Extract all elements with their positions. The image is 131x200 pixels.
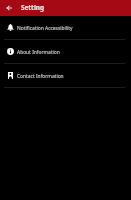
button[interactable]: About Information (0, 40, 131, 63)
staticText: About Information (17, 49, 60, 56)
staticText: Notification Accessibility (17, 25, 73, 32)
button[interactable]: Back (0, 0, 17, 16)
staticText: Setting (21, 3, 44, 12)
button[interactable]: Contact Information (0, 64, 131, 87)
staticText: Contact Information (17, 73, 64, 80)
button[interactable]: Notification Accessibility (0, 16, 131, 39)
